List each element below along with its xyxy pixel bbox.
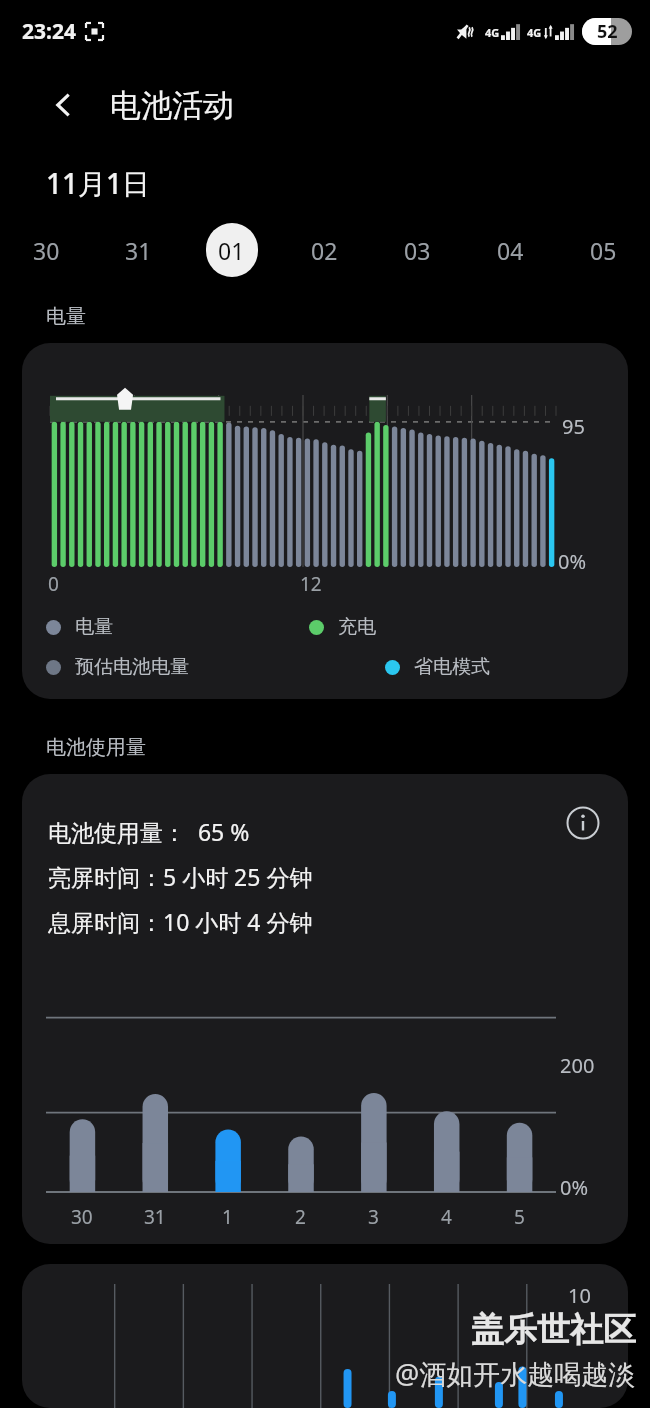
staticText: 预估电池电量 [75, 655, 189, 679]
button[interactable]: Info [560, 800, 606, 846]
staticText: 3 [368, 1204, 379, 1230]
staticText: 31 [144, 1204, 166, 1230]
staticText: 01 [218, 235, 245, 266]
button[interactable]: 电池使用量： 65 % [22, 774, 628, 1244]
staticText: 亮屏时间：5 小时 25 分钟 [48, 861, 313, 892]
staticText: 充电 [338, 615, 376, 639]
staticText: 省电模式 [414, 655, 490, 679]
staticText: 电池使用量： 65 % [48, 816, 250, 847]
staticText: 4G [485, 25, 500, 40]
staticText: 30 [71, 1204, 93, 1230]
staticText: 2 [295, 1204, 306, 1230]
staticText: 10 [568, 1282, 591, 1309]
staticText: 4 [441, 1204, 452, 1230]
staticText: 1 [222, 1204, 233, 1230]
staticText: 04 [497, 235, 524, 266]
staticText: 11月1日 [46, 164, 151, 202]
staticText: 31 [125, 235, 152, 266]
button[interactable]: 01 [185, 218, 278, 282]
button[interactable]: 03 [371, 218, 464, 282]
staticText: 息屏时间：10 小时 4 分钟 [48, 906, 313, 937]
button[interactable]: 02 [278, 218, 371, 282]
staticText: 52 [597, 19, 618, 44]
button[interactable]: 05 [557, 218, 650, 282]
staticText: 电池活动 [110, 86, 234, 125]
staticText: @酒如开水越喝越淡 [395, 1355, 636, 1392]
staticText: 4G [527, 25, 542, 40]
staticText: 5 [514, 1204, 525, 1230]
button[interactable]: 95 [22, 343, 628, 699]
staticText: 0% [558, 548, 587, 575]
staticText: 电量 [46, 304, 86, 329]
button[interactable]: Back [40, 81, 88, 129]
button[interactable]: 30 [0, 218, 92, 282]
staticText: 0% [560, 1174, 589, 1201]
staticText: 12 [300, 571, 322, 597]
staticText: 23:24 [22, 17, 76, 46]
staticText: 0 [48, 571, 59, 597]
button[interactable]: 04 [464, 218, 557, 282]
staticText: 电池使用量 [46, 735, 146, 760]
staticText: 05 [590, 235, 617, 266]
staticText: 200 [560, 1052, 595, 1079]
button[interactable]: 31 [92, 218, 185, 282]
staticText: 电量 [75, 615, 113, 639]
staticText: 02 [311, 235, 338, 266]
staticText: 30 [33, 235, 60, 266]
staticText: 95 [562, 413, 585, 440]
staticText: 盖乐世社区 [471, 1309, 636, 1351]
staticText: 03 [404, 235, 431, 266]
button[interactable]: 10 [22, 1264, 628, 1408]
